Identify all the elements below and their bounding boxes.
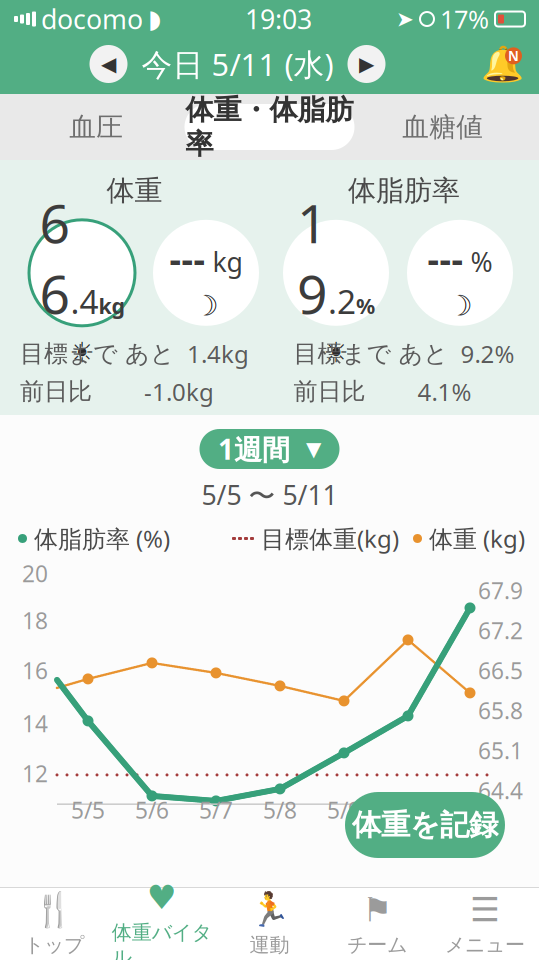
staticText: --- — [427, 234, 463, 282]
staticText: 体重バイタル — [112, 920, 212, 960]
staticText: docomo — [41, 1, 143, 37]
staticText: 20 — [22, 558, 48, 588]
staticText: 64.4 — [478, 775, 523, 805]
staticText: ☀ — [323, 337, 348, 369]
staticText: 体脂肪率 (%) — [34, 523, 170, 554]
button[interactable]: 血糖値 — [354, 104, 531, 150]
button[interactable]: 血圧 — [8, 104, 184, 150]
staticText: 12 — [22, 758, 48, 788]
staticText: 17% — [440, 2, 489, 36]
staticText: 🍴 — [33, 891, 75, 929]
staticText: 体脂肪率 — [348, 173, 460, 208]
staticText: ☽ — [447, 290, 472, 322]
staticText: 5/7 — [199, 795, 233, 825]
staticText: 運動 — [249, 933, 289, 957]
button[interactable]: 次の日 — [347, 45, 385, 83]
staticText: -1.0kg — [144, 376, 214, 408]
button[interactable]: 体重・体脂肪率 — [184, 104, 354, 150]
staticText: ♥ — [147, 878, 177, 916]
staticText: ☽ — [193, 290, 218, 322]
staticText: 5/10 — [391, 795, 425, 855]
staticText: 65.1 — [478, 735, 523, 765]
staticText: 16 — [22, 655, 48, 685]
staticText: ☀ — [69, 337, 94, 369]
staticText: % — [463, 244, 492, 279]
staticText: 5/5 — [71, 795, 105, 825]
staticText: 65.8 — [478, 695, 523, 725]
staticText: ➤ — [396, 7, 414, 31]
staticText: N — [508, 47, 519, 65]
staticText: 今日 5/11 (水) — [141, 44, 333, 84]
staticText: 体重を記録 — [352, 807, 498, 843]
staticText: 目標体重(kg) — [261, 523, 399, 554]
button[interactable]: 体重を記録 — [345, 792, 505, 858]
staticText: 5/9 — [327, 795, 361, 825]
staticText: kg — [98, 292, 124, 320]
staticText: 血糖値 — [402, 111, 483, 143]
staticText: ⚑ — [362, 891, 392, 929]
staticText: ▼ — [306, 438, 321, 460]
staticText: 体重 (kg) — [429, 523, 525, 554]
staticText: 18 — [22, 605, 48, 635]
staticText: % — [356, 292, 375, 320]
staticText: 14 — [22, 708, 48, 738]
staticText: ▶ — [359, 53, 374, 75]
staticText: kg — [205, 244, 242, 279]
button[interactable]: ⚑ — [323, 888, 431, 960]
staticText: 5/11 — [453, 795, 487, 855]
button[interactable]: ☰ — [431, 888, 539, 960]
staticText: 9.2% — [448, 338, 514, 370]
staticText: 血圧 — [69, 111, 123, 143]
staticText: トップ — [24, 933, 84, 957]
staticText: ☰ — [470, 891, 500, 929]
staticText: 体重・体脂肪率 — [185, 93, 353, 161]
staticText: 66 — [39, 187, 70, 329]
staticText: ◀ — [101, 53, 116, 75]
staticText: 67.2 — [478, 615, 523, 645]
staticText: 体重 — [106, 173, 162, 208]
staticText: --- — [169, 234, 205, 282]
button[interactable]: 1週間 — [199, 429, 339, 469]
staticText: 19 — [297, 187, 328, 329]
staticText: 🏃 — [248, 891, 290, 929]
button[interactable]: 🏃 — [216, 888, 323, 960]
staticText: 1週間 — [218, 430, 290, 468]
staticText: 前日比 — [293, 377, 365, 406]
staticText: 🔔 — [480, 44, 523, 84]
staticText: .4 — [70, 279, 98, 323]
staticText: 目標まで あと — [20, 339, 175, 368]
button[interactable]: お知らせ — [475, 42, 529, 86]
staticText: ◗ — [148, 5, 161, 33]
staticText: 目標まで あと — [293, 339, 448, 368]
staticText: チーム — [347, 933, 407, 957]
button[interactable]: 🍴 — [0, 888, 108, 960]
staticText: 前日比 — [20, 377, 92, 406]
staticText: 5/6 — [135, 795, 169, 825]
staticText: .2 — [328, 279, 356, 323]
staticText: 67.9 — [478, 575, 523, 605]
staticText: 1.4kg — [175, 338, 249, 370]
button[interactable]: ♥ — [108, 888, 216, 960]
staticText: 5/8 — [263, 795, 297, 825]
staticText: 4.1% — [417, 376, 471, 408]
staticText: 66.5 — [478, 655, 523, 685]
staticText: 19:03 — [245, 1, 312, 37]
staticText: 5/5 〜 5/11 — [201, 477, 337, 513]
staticText: メニュー — [445, 933, 525, 957]
button[interactable]: 前の日 — [89, 45, 127, 83]
